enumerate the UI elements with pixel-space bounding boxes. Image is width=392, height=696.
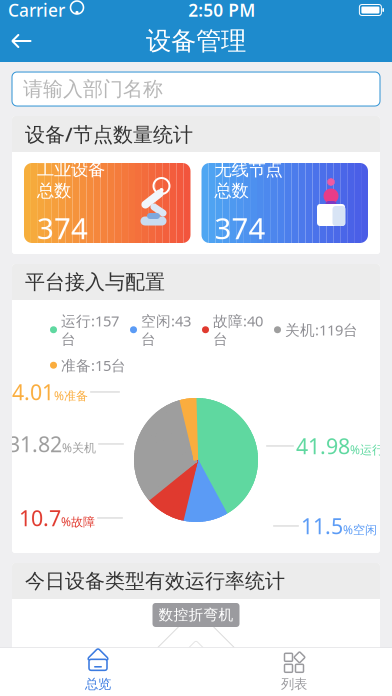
staticText: 折弯单元 (302, 653, 362, 671)
staticText: 请输入部门名称 (23, 77, 163, 101)
button[interactable]: 总览 (0, 648, 196, 696)
staticText: 374 (214, 208, 265, 247)
staticText: 关机:119台 (285, 320, 358, 339)
button[interactable]: Back (0, 21, 44, 61)
staticText: 工业设备总数 (37, 159, 105, 201)
staticText: Carrier (8, 0, 65, 21)
staticText: 列表 (281, 676, 307, 692)
staticText: 平台接入与配置 (25, 270, 165, 294)
staticText: 无线节点总数 (214, 159, 282, 201)
staticText: 运行:157台 (61, 311, 119, 348)
staticText: %故障 (61, 514, 95, 529)
staticText: 2:50 PM (188, 0, 255, 21)
staticText: 今日设备类型有效运行率统计 (25, 569, 285, 593)
staticText: %准备 (54, 388, 88, 403)
button[interactable]: 请输入部门名称 (12, 72, 380, 106)
staticText: 故障:40台 (213, 311, 263, 348)
staticText: 31.82 (8, 430, 62, 458)
staticText: 设备/节点数量统计 (25, 121, 193, 147)
button[interactable]: 列表 (196, 648, 392, 696)
staticText: %关机 (62, 440, 96, 455)
staticText: 准备:15台 (61, 355, 126, 375)
staticText: 374 (37, 208, 88, 247)
staticText: 总览 (85, 676, 111, 692)
staticText: %运行 (350, 442, 384, 457)
staticText: 41.98 (296, 432, 350, 460)
staticText: 4.01 (12, 378, 54, 406)
staticText: 10.7 (19, 504, 61, 532)
staticText: 激光切割机床 (30, 653, 120, 671)
staticText: %空闲 (343, 522, 377, 537)
button[interactable]: 工业设备总数 (24, 163, 190, 243)
staticText: 空闲:43台 (141, 311, 191, 348)
staticText: 11.5 (301, 512, 343, 540)
staticText: 数控折弯机 (158, 606, 233, 624)
button[interactable]: 无线节点总数 (201, 163, 368, 243)
staticText: 设备管理 (146, 25, 246, 56)
